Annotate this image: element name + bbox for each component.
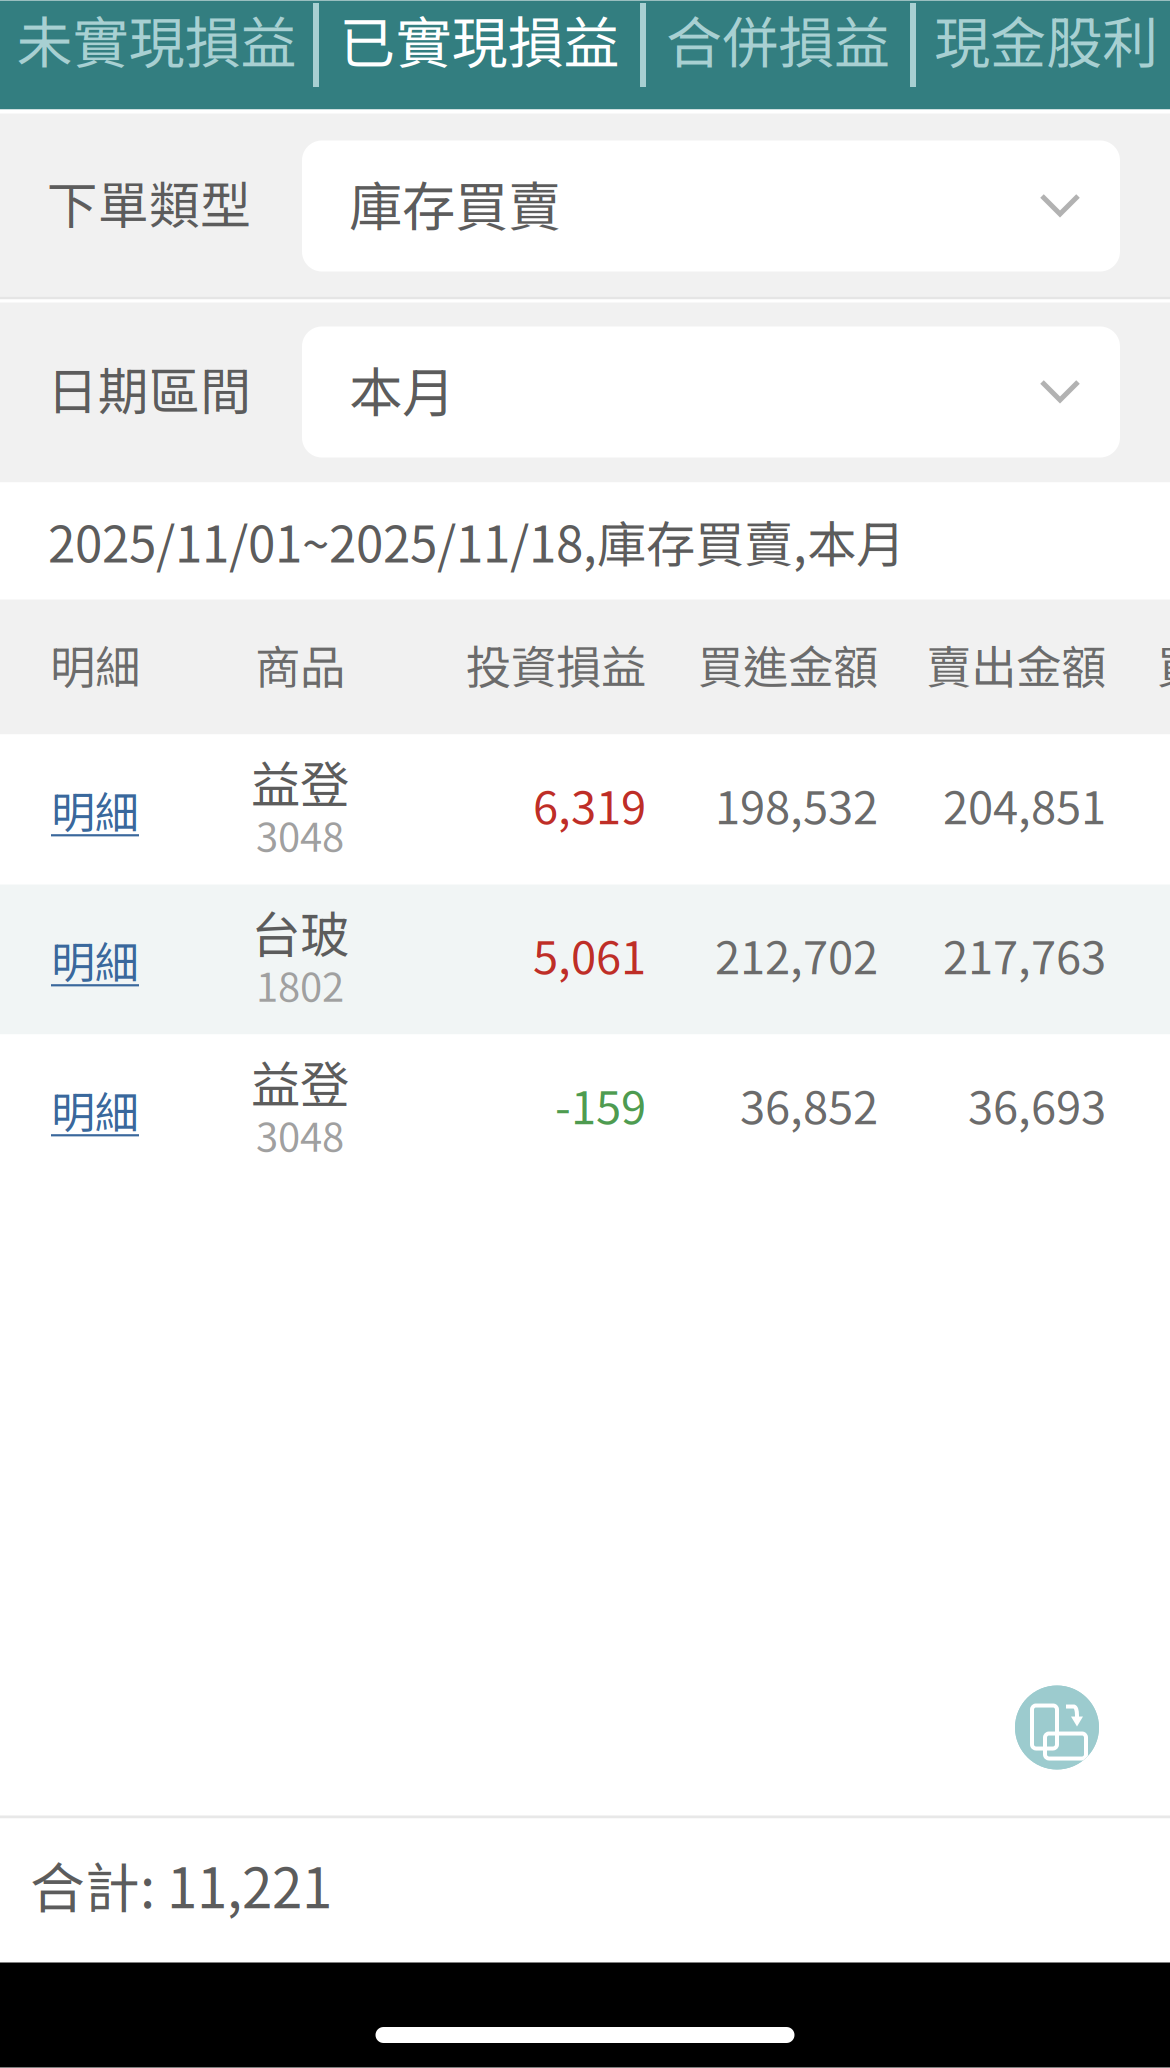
staticText: 買進金額 [698,631,878,697]
button[interactable]: 庫存買賣 [302,140,1120,271]
staticText: 日期區間 [47,351,251,425]
button[interactable]: 本月 [302,326,1120,457]
staticText: 買 [1157,631,1170,697]
button[interactable]: 合併損益 [646,0,910,109]
staticText: 明細 [50,631,140,697]
staticText: 本月 [349,350,455,428]
button[interactable]: Rotate screen [1015,1685,1099,1769]
staticText: 198,532 [715,772,878,837]
staticText: 賣出金額 [926,631,1106,697]
staticText: 212,702 [715,922,878,987]
staticText: 204,851 [943,772,1106,837]
staticText: 36,852 [740,1072,878,1137]
staticText: 合計: 11,221 [30,1845,332,1924]
staticText: 明細 [51,928,139,991]
staticText: 明細 [51,1078,139,1141]
staticText: 2025/11/01~2025/11/18,庫存買賣,本月 [48,505,905,577]
staticText: 5,061 [533,922,646,987]
staticText: 3048 [256,1105,344,1163]
staticText: 台玻 [251,896,349,967]
staticText: 下單類型 [47,165,251,239]
button[interactable]: 明細 [0,1034,190,1184]
button[interactable]: 明細 [0,884,190,1034]
button[interactable]: 明細 [0,734,190,884]
staticText: 益登 [251,1046,349,1117]
staticText: 合併損益 [666,0,890,80]
button[interactable]: 現金股利 [916,0,1170,109]
button[interactable]: 已實現損益 [319,0,640,109]
staticText: 明細 [51,778,139,841]
staticText: 已實現損益 [339,0,619,80]
staticText: 1802 [256,955,344,1013]
staticText: 庫存買賣 [349,164,561,242]
staticText: 6,319 [533,772,646,837]
button[interactable]: 未實現損益 [0,0,313,109]
staticText: 益登 [251,746,349,817]
staticText: 3048 [256,805,344,863]
staticText: 商品 [255,631,345,697]
staticText: 未實現損益 [16,0,296,80]
staticText: 217,763 [943,922,1106,987]
staticText: 投資損益 [466,631,646,697]
staticText: 36,693 [968,1072,1106,1137]
staticText: 現金股利 [934,0,1158,80]
staticText: -159 [555,1072,646,1137]
